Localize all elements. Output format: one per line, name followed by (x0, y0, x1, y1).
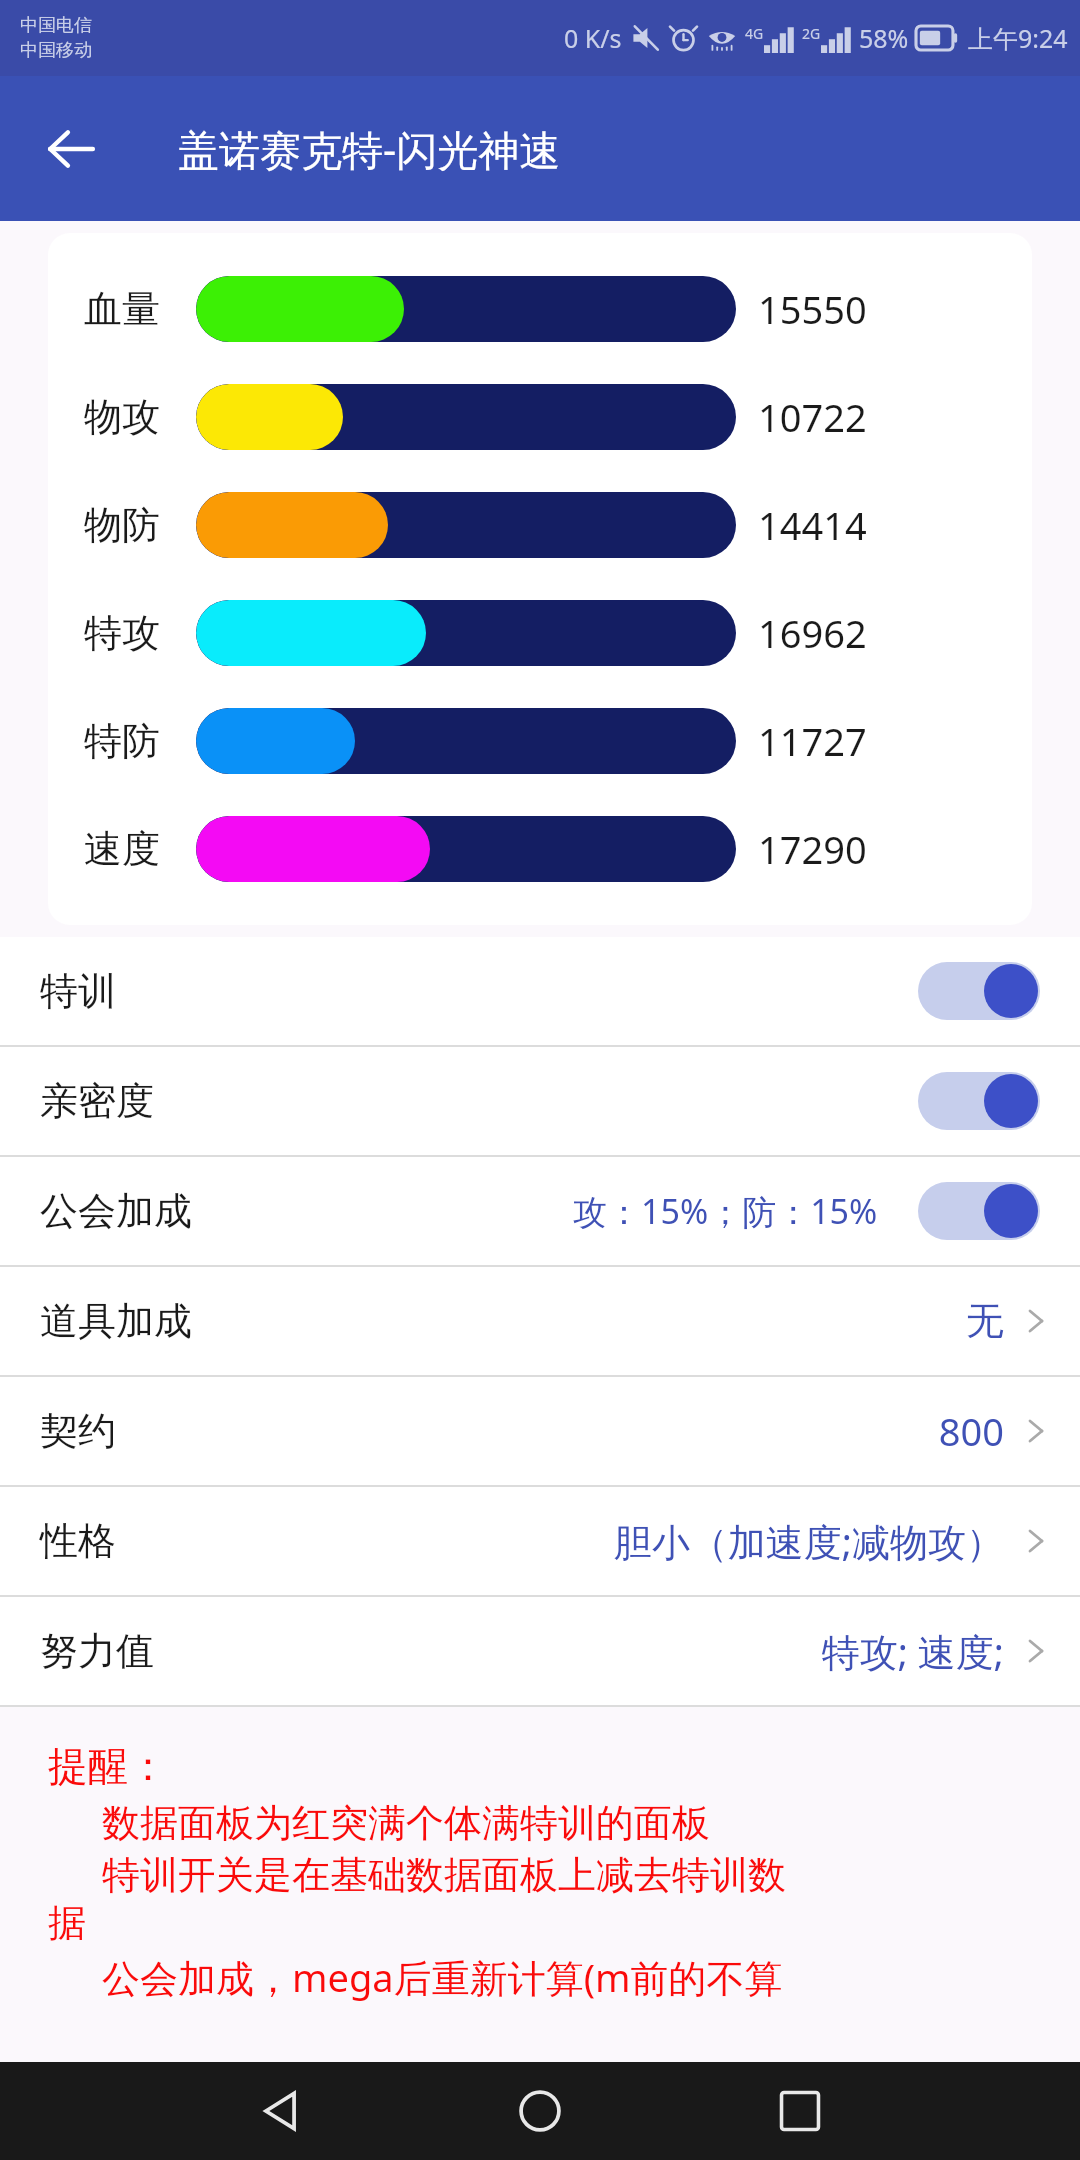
staticText: 亲密度 (40, 1077, 154, 1125)
staticText: 物攻 (84, 393, 160, 441)
button[interactable]: 契约 (0, 1377, 1080, 1487)
staticText: 数据面板为红突满个体满特训的面板 (102, 1799, 710, 1847)
staticText: 公会加成，mega后重新计算(m前的不算 (102, 1951, 783, 2003)
staticText: 4G (745, 24, 764, 43)
button[interactable]: Back (32, 110, 110, 188)
staticText: 道具加成 (40, 1297, 192, 1345)
staticText: 契约 (40, 1407, 116, 1455)
staticText: 11727 (758, 715, 867, 767)
other: 特训 toggle (918, 962, 1040, 1020)
staticText: 58% (859, 21, 909, 55)
staticText: 10722 (758, 391, 867, 443)
staticText: 特防 (84, 717, 160, 765)
button[interactable]: Recents (760, 2071, 840, 2151)
other: 亲密度 toggle (918, 1072, 1040, 1130)
button[interactable]: 特训 (0, 937, 1080, 1047)
staticText: 胆小（加速度;减物攻） (613, 1515, 1004, 1567)
staticText: 中国电信 (20, 14, 92, 37)
button[interactable]: Back (240, 2071, 320, 2151)
staticText: 攻：15%；防：15% (573, 1188, 878, 1234)
button[interactable]: 公会加成 (0, 1157, 1080, 1267)
staticText: 盖诺赛克特-闪光神速 (178, 121, 561, 177)
button[interactable]: Home (500, 2071, 580, 2151)
button[interactable]: 性格 (0, 1487, 1080, 1597)
staticText: 物防 (84, 501, 160, 549)
staticText: 特攻; 速度; (821, 1625, 1004, 1677)
staticText: 无 (966, 1297, 1004, 1345)
button[interactable]: 努力值 (0, 1597, 1080, 1707)
staticText: 上午9:24 (968, 21, 1068, 55)
staticText: 据 (48, 1899, 86, 1947)
staticText: 800 (938, 1405, 1004, 1457)
staticText: 17290 (758, 823, 867, 875)
button[interactable]: 道具加成 (0, 1267, 1080, 1377)
other: 公会加成 toggle (918, 1182, 1040, 1240)
staticText: 15550 (758, 283, 867, 335)
staticText: 速度 (84, 825, 160, 873)
button[interactable]: 亲密度 (0, 1047, 1080, 1157)
staticText: 14414 (758, 499, 867, 551)
staticText: 提醒： (48, 1741, 168, 1791)
staticText: 努力值 (40, 1627, 154, 1675)
staticText: 公会加成 (40, 1187, 192, 1235)
staticText: 性格 (40, 1517, 116, 1565)
staticText: 血量 (84, 285, 160, 333)
staticText: 0 K/s (564, 21, 622, 55)
staticText: 中国移动 (20, 39, 92, 62)
staticText: 特攻 (84, 609, 160, 657)
staticText: 特训 (40, 967, 116, 1015)
staticText: 2G (802, 24, 821, 43)
staticText: 特训开关是在基础数据面板上减去特训数 (102, 1851, 786, 1899)
staticText: 16962 (758, 607, 867, 659)
